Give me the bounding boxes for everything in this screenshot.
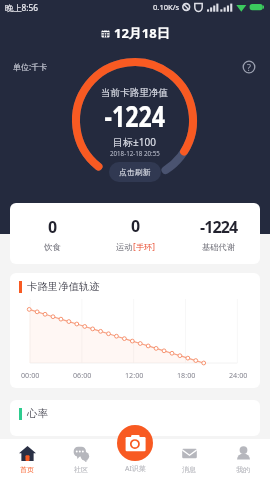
- button[interactable]: 0: [94, 215, 177, 252]
- staticText: 饮食: [44, 242, 61, 252]
- button[interactable]: 点击刷新: [109, 162, 161, 182]
- button[interactable]: 我的: [216, 439, 270, 480]
- button[interactable]: AI识菜: [117, 425, 153, 461]
- staticText: 消息: [182, 465, 196, 474]
- button[interactable]: 0: [10, 216, 94, 252]
- staticText: 2018-12-18 20:55: [110, 149, 160, 157]
- staticText: 卡路里净值轨迹: [27, 280, 100, 293]
- staticText: 运动: [116, 242, 133, 252]
- button[interactable]: 社区: [54, 439, 108, 480]
- staticText: 当前卡路里净值: [101, 87, 169, 99]
- staticText: 基础代谢: [202, 242, 236, 252]
- staticText: AI识菜: [125, 464, 146, 474]
- staticText: 单位:千卡: [13, 61, 48, 72]
- button[interactable]: Help: [242, 60, 256, 74]
- staticText: 目标±100: [113, 135, 156, 149]
- button[interactable]: 消息: [162, 439, 216, 480]
- staticText: 0.10K/s: [153, 2, 180, 12]
- staticText: 12月18日: [114, 24, 170, 42]
- staticText: [手环]: [133, 241, 156, 252]
- staticText: 心率: [27, 407, 48, 420]
- staticText: ?: [247, 61, 251, 73]
- staticText: 晚上8:56: [5, 2, 39, 13]
- staticText: 24:00: [229, 370, 248, 380]
- staticText: 社区: [74, 465, 88, 474]
- staticText: 我的: [236, 465, 250, 474]
- staticText: 0: [48, 216, 57, 238]
- staticText: 18:00: [177, 370, 196, 380]
- staticText: 0: [131, 215, 140, 237]
- staticText: -1224: [200, 216, 238, 238]
- button[interactable]: 首页: [0, 439, 54, 480]
- staticText: 06:00: [73, 370, 92, 380]
- staticText: 12:00: [125, 370, 144, 380]
- button[interactable]: -1224: [177, 216, 260, 252]
- staticText: 00:00: [21, 370, 40, 380]
- staticText: 首页: [20, 465, 34, 474]
- staticText: 点击刷新: [119, 167, 151, 177]
- staticText: -1224: [105, 96, 165, 135]
